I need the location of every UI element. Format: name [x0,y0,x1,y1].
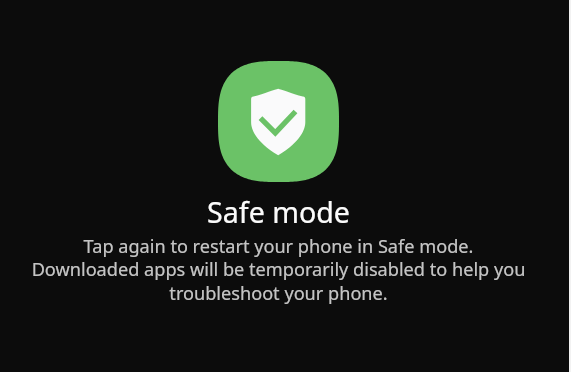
button[interactable]: Safe mode [218,61,339,182]
staticText: Safe mode [0,192,564,231]
staticText: Tap again to restart your phone in Safe … [0,234,564,306]
button[interactable]: Tap again to restart in Safe mode [0,0,571,372]
